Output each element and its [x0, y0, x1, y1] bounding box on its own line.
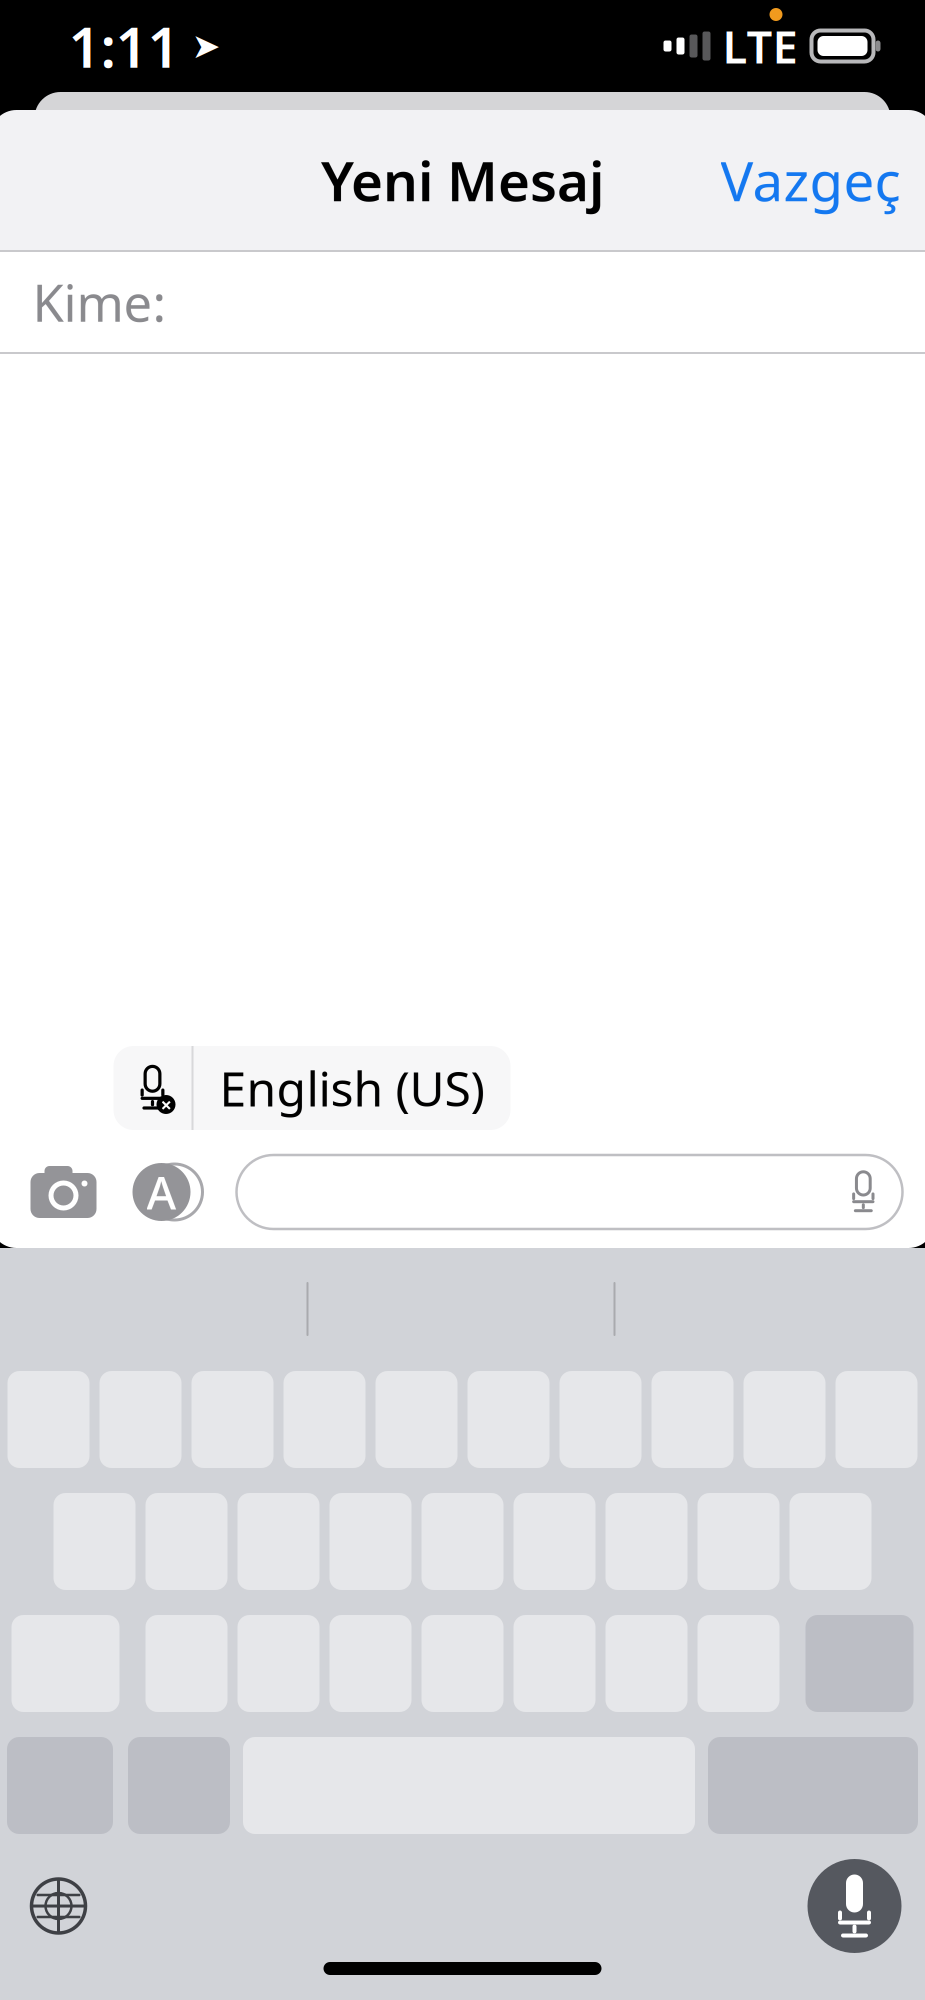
- button[interactable]: Dictation off: [113, 1046, 191, 1130]
- button[interactable]: Apps: [122, 1151, 212, 1233]
- staticText: ➤: [191, 26, 220, 66]
- staticText: LTE: [722, 16, 797, 76]
- button[interactable]: Next keyboard: [15, 1863, 101, 1949]
- staticText: Kime:: [32, 268, 166, 336]
- staticText: A: [146, 1162, 176, 1222]
- staticText: Yeni Mesaj: [321, 144, 604, 216]
- button[interactable]: [236, 1155, 902, 1229]
- staticText: English (US): [219, 1056, 484, 1120]
- button[interactable]: Vazgeç: [702, 130, 918, 230]
- button[interactable]: Camera: [18, 1152, 108, 1232]
- button[interactable]: Dictate: [807, 1859, 901, 1953]
- staticText: ×: [160, 1091, 171, 1118]
- staticText: Vazgeç: [720, 144, 900, 216]
- button[interactable]: English (US): [193, 1046, 510, 1130]
- button[interactable]: Kime:: [0, 252, 925, 352]
- staticText: 1:11: [68, 9, 179, 83]
